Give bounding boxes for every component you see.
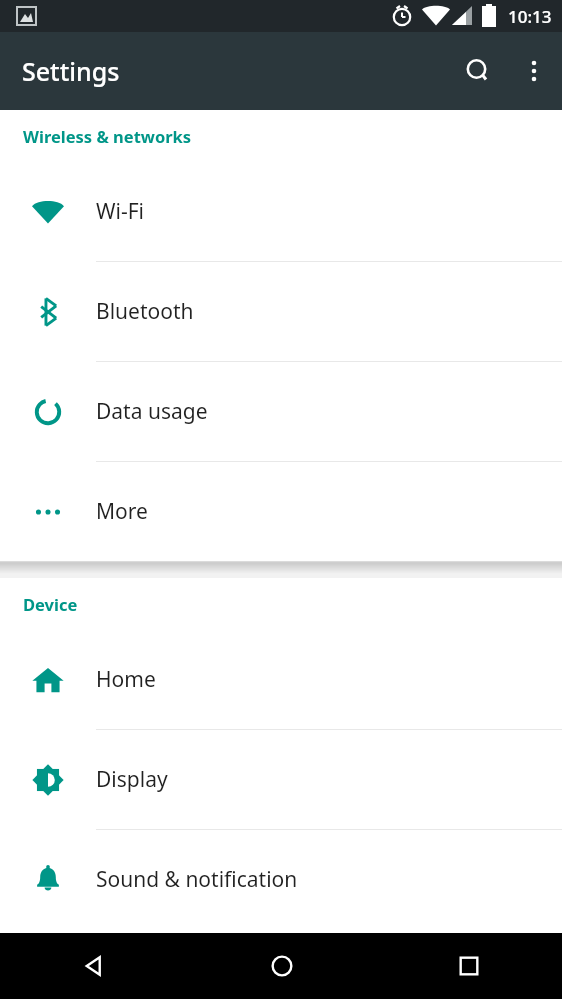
button[interactable]: More options	[506, 43, 562, 99]
staticText: Data usage	[96, 397, 208, 426]
button[interactable]: Wi-Fi	[0, 162, 562, 261]
button[interactable]: Search	[450, 43, 506, 99]
staticText: 10:13	[508, 5, 552, 28]
button[interactable]: Back	[0, 933, 188, 999]
staticText: Settings	[22, 54, 120, 88]
staticText: Home	[96, 665, 156, 694]
button[interactable]: Sound & notification	[0, 830, 562, 929]
staticText: Wi-Fi	[96, 197, 145, 226]
staticText: Wireless & networks	[23, 125, 192, 147]
staticText: More	[96, 497, 148, 526]
button[interactable]: Home	[188, 933, 375, 999]
button[interactable]: Data usage	[0, 362, 562, 461]
staticText: Sound & notification	[96, 865, 298, 894]
staticText: Device	[23, 593, 78, 615]
button[interactable]: Bluetooth	[0, 262, 562, 361]
button[interactable]: Home	[0, 630, 562, 729]
staticText: Display	[96, 765, 168, 794]
button[interactable]: Recent apps	[375, 933, 562, 999]
staticText: Bluetooth	[96, 297, 194, 326]
button[interactable]: Display	[0, 730, 562, 829]
button[interactable]: More	[0, 462, 562, 561]
